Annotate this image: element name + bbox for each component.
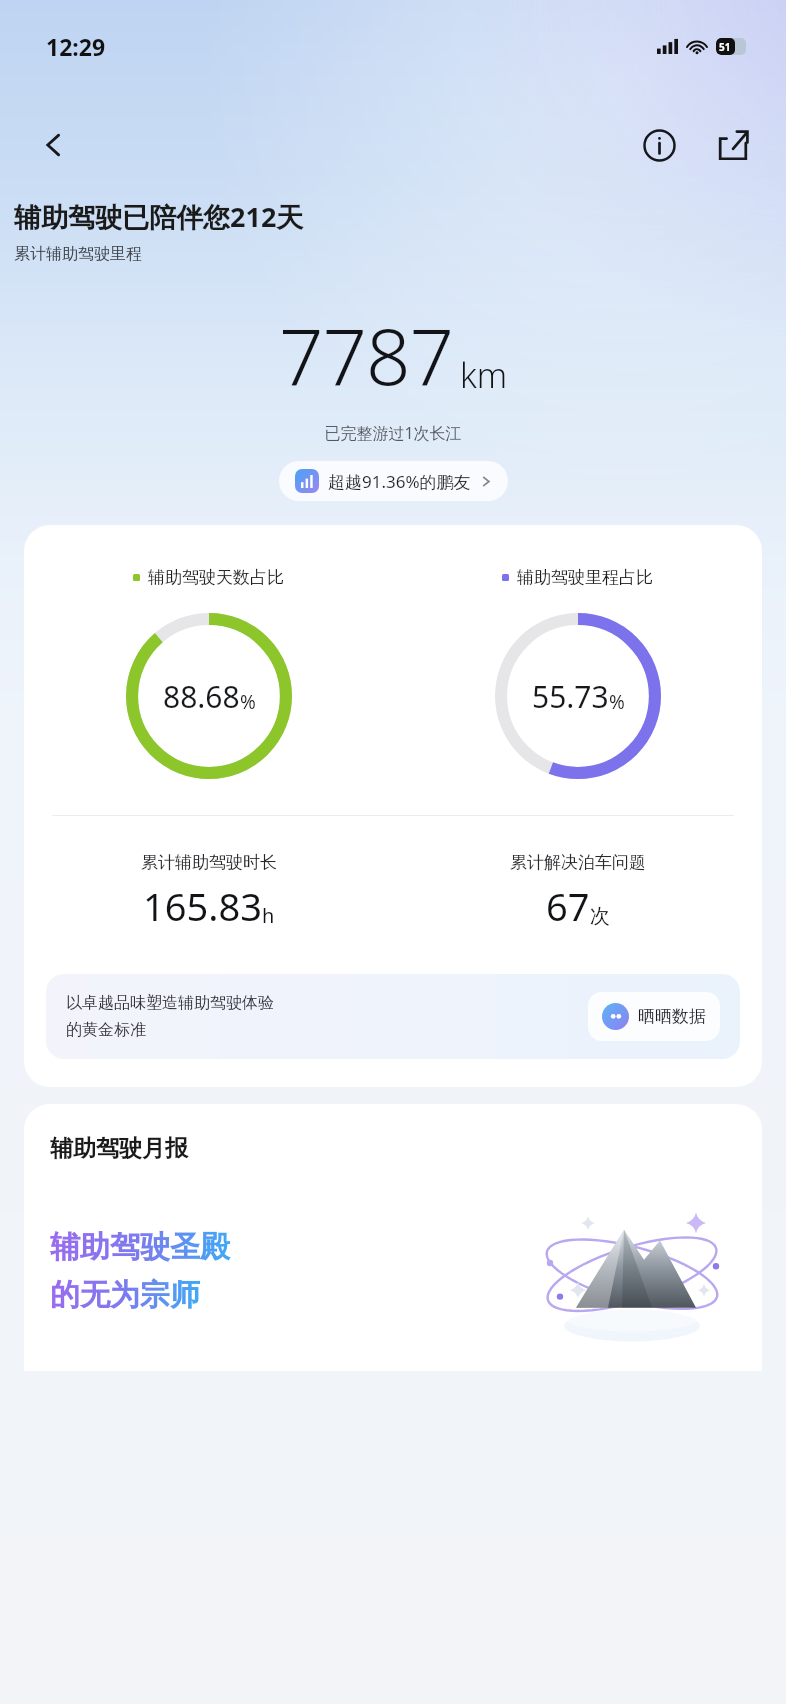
staticText: 辅助驾驶月报 bbox=[50, 1134, 188, 1163]
staticText: 67 bbox=[546, 880, 590, 932]
staticText: 晒晒数据 bbox=[638, 1006, 706, 1027]
button[interactable]: 晒晒数据 bbox=[588, 992, 720, 1041]
staticText: 88.68 bbox=[163, 676, 240, 717]
button[interactable]: Back bbox=[28, 119, 80, 171]
staticText: 12:29 bbox=[46, 31, 106, 62]
button[interactable]: 辅助驾驶月报 bbox=[24, 1104, 762, 1371]
staticText: 的无为宗师 bbox=[50, 1276, 200, 1314]
staticText: 55.73 bbox=[532, 676, 609, 717]
button[interactable]: Info bbox=[632, 118, 686, 172]
button[interactable]: Share bbox=[706, 118, 760, 172]
staticText: 超越91.36%的鹏友 bbox=[328, 470, 471, 493]
staticText: 次 bbox=[590, 904, 610, 929]
staticText: 以卓越品味塑造辅助驾驶体验 bbox=[66, 993, 274, 1013]
staticText: 辅助驾驶已陪伴您212天 bbox=[14, 198, 304, 235]
staticText: 51 bbox=[719, 40, 731, 54]
staticText: 辅助驾驶里程占比 bbox=[517, 567, 653, 588]
staticText: h bbox=[262, 902, 275, 929]
staticText: % bbox=[609, 689, 625, 715]
staticText: km bbox=[460, 352, 508, 398]
button[interactable]: 超越91.36%的鹏友 bbox=[279, 461, 508, 501]
staticText: 辅助驾驶圣殿 bbox=[50, 1228, 230, 1266]
staticText: 已完整游过1次长江 bbox=[0, 422, 786, 444]
staticText: % bbox=[240, 689, 256, 715]
staticText: 7787 bbox=[279, 302, 454, 408]
staticText: 165.83 bbox=[143, 880, 262, 932]
staticText: 累计辅助驾驶时长 bbox=[141, 852, 277, 873]
staticText: 辅助驾驶天数占比 bbox=[148, 567, 284, 588]
staticText: 累计解决泊车问题 bbox=[510, 852, 646, 873]
staticText: 的黄金标准 bbox=[66, 1020, 146, 1040]
staticText: 累计辅助驾驶里程 bbox=[14, 244, 142, 264]
